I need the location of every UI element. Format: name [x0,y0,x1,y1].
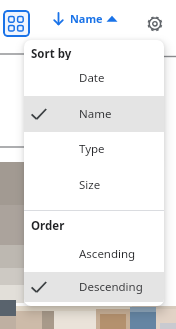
staticText: Descending [79,279,143,295]
staticText: Sort by [31,46,72,60]
button[interactable] [145,14,165,34]
button[interactable]: Name [24,96,164,132]
staticText: Name [79,106,112,122]
button[interactable] [3,10,30,37]
staticText: Name [70,11,103,26]
staticText: Order [31,218,65,232]
button[interactable]: Descending [24,272,164,302]
button[interactable]: Type [24,131,164,167]
button[interactable]: Ascending [24,236,164,272]
button[interactable]: Size [24,167,164,203]
staticText: Ascending [79,246,136,262]
button[interactable]: Date [24,60,164,96]
staticText: Date [79,70,105,86]
button[interactable]: Name [50,8,122,28]
staticText: Size [79,177,101,193]
staticText: Type [79,141,105,157]
